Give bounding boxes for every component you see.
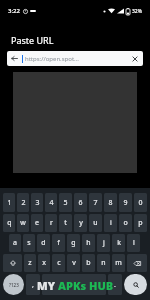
- staticText: MY: [37, 278, 58, 293]
- button[interactable]: 2: [17, 193, 29, 212]
- staticText: k: [117, 238, 121, 248]
- staticText: ?123: [9, 282, 19, 288]
- staticText: y: [79, 218, 83, 228]
- button[interactable]: 8: [104, 193, 117, 212]
- staticText: Paste URL: [11, 34, 54, 46]
- button[interactable]: a: [9, 234, 21, 252]
- staticText: n: [101, 258, 106, 268]
- button[interactable]: Clear text: [127, 51, 142, 66]
- button[interactable]: l: [127, 234, 140, 252]
- button[interactable]: b: [82, 254, 95, 272]
- staticText: b: [86, 258, 91, 268]
- button[interactable]: y: [74, 214, 87, 232]
- staticText: ,: [32, 280, 34, 290]
- staticText: APKs HUB: [58, 278, 114, 293]
- button[interactable]: c: [52, 254, 65, 272]
- staticText: 7: [93, 198, 98, 208]
- staticText: x: [42, 258, 46, 268]
- button[interactable]: f: [52, 234, 65, 252]
- staticText: r: [50, 218, 53, 228]
- button[interactable]: Backspace: [127, 254, 147, 272]
- button[interactable]: 9: [119, 193, 132, 212]
- button[interactable]: Back: [7, 51, 143, 66]
- staticText: 4: [49, 198, 54, 208]
- button[interactable]: ,: [26, 274, 40, 295]
- button[interactable]: e: [31, 214, 43, 232]
- staticText: 32%: [132, 8, 142, 15]
- button[interactable]: 1: [3, 193, 15, 212]
- button[interactable]: Shift: [3, 254, 22, 272]
- staticText: z: [28, 258, 32, 268]
- button[interactable]: w: [17, 214, 29, 232]
- staticText: g: [71, 238, 76, 248]
- button[interactable]: 0: [134, 193, 147, 212]
- staticText: p: [138, 218, 143, 228]
- staticText: 5: [63, 198, 68, 208]
- staticText: e: [35, 218, 39, 228]
- staticText: f: [57, 238, 60, 248]
- button[interactable]: z: [24, 254, 36, 272]
- staticText: q: [7, 218, 12, 228]
- staticText: 8: [108, 198, 113, 208]
- button[interactable]: k: [112, 234, 125, 252]
- button[interactable]: ?123: [3, 274, 24, 295]
- staticText: 3: [35, 198, 40, 208]
- button[interactable]: i: [104, 214, 117, 232]
- staticText: c: [57, 258, 61, 268]
- button[interactable]: s: [23, 234, 35, 252]
- staticText: 0: [138, 198, 143, 208]
- staticText: 3:22: [8, 7, 20, 15]
- button[interactable]: g: [67, 234, 80, 252]
- staticText: i: [110, 218, 112, 228]
- button[interactable]: n: [97, 254, 110, 272]
- button[interactable]: p: [134, 214, 147, 232]
- staticText: s: [27, 238, 31, 248]
- button[interactable]: 6: [74, 193, 87, 212]
- button[interactable]: 3: [31, 193, 43, 212]
- button[interactable]: u: [89, 214, 102, 232]
- button[interactable]: m: [112, 254, 125, 272]
- button[interactable]: r: [45, 214, 57, 232]
- staticText: a: [13, 238, 17, 248]
- staticText: .: [114, 280, 116, 290]
- button[interactable]: [42, 274, 106, 295]
- button[interactable]: j: [97, 234, 110, 252]
- button[interactable]: t: [59, 214, 72, 232]
- staticText: v: [72, 258, 76, 268]
- button[interactable]: .: [108, 274, 122, 295]
- button[interactable]: Search: [124, 274, 147, 295]
- button[interactable]: v: [67, 254, 80, 272]
- staticText: 6: [78, 198, 83, 208]
- staticText: t: [64, 218, 67, 228]
- staticText: j: [103, 238, 105, 248]
- staticText: 1: [7, 198, 12, 208]
- staticText: 9: [123, 198, 128, 208]
- staticText: w: [20, 218, 26, 228]
- staticText: m: [115, 258, 122, 268]
- staticText: d: [41, 238, 46, 248]
- button[interactable]: 5: [59, 193, 72, 212]
- staticText: 2: [21, 198, 26, 208]
- button[interactable]: 7: [89, 193, 102, 212]
- button[interactable]: h: [82, 234, 95, 252]
- staticText: https://open.spot...: [25, 55, 79, 63]
- button[interactable]: o: [119, 214, 132, 232]
- staticText: l: [133, 238, 135, 248]
- staticText: o: [123, 218, 128, 228]
- button[interactable]: q: [3, 214, 15, 232]
- button[interactable]: d: [37, 234, 50, 252]
- staticText: u: [93, 218, 98, 228]
- button[interactable]: x: [38, 254, 50, 272]
- button[interactable]: Back: [7, 51, 22, 66]
- button[interactable]: 4: [45, 193, 57, 212]
- staticText: h: [86, 238, 91, 248]
